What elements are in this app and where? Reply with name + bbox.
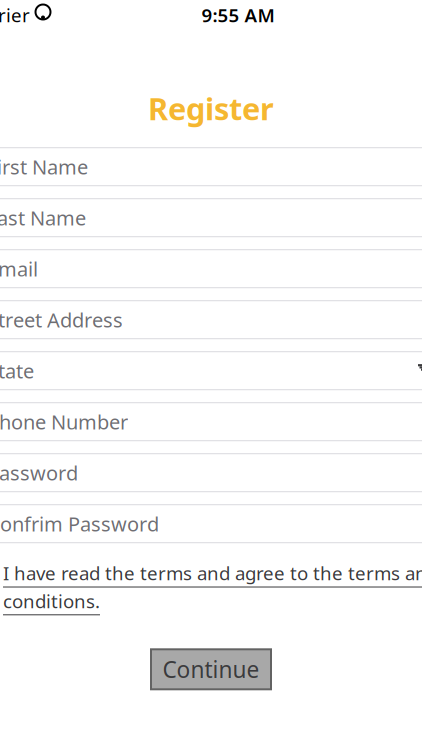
- staticText: Confrim Password: [0, 510, 159, 537]
- button[interactable]: I have read the terms and agree to the t…: [0, 543, 422, 615]
- button[interactable]: State: [0, 352, 422, 390]
- staticText: Continue: [162, 654, 259, 684]
- staticText: Password: [0, 459, 78, 486]
- staticText: Phone Number: [0, 408, 128, 435]
- staticText: State: [0, 357, 34, 384]
- staticText: I have read the terms and agree to the t…: [3, 561, 422, 585]
- staticText: conditions.: [3, 588, 100, 613]
- staticText: 9:55 AM: [201, 3, 274, 27]
- staticText: Last Name: [0, 204, 86, 231]
- staticText: Register: [148, 88, 274, 129]
- staticText: Email: [0, 255, 38, 282]
- staticText: Street Address: [0, 306, 123, 333]
- staticText: Carrier: [0, 3, 30, 27]
- staticText: First Name: [0, 153, 88, 180]
- button[interactable]: Continue: [151, 649, 271, 689]
